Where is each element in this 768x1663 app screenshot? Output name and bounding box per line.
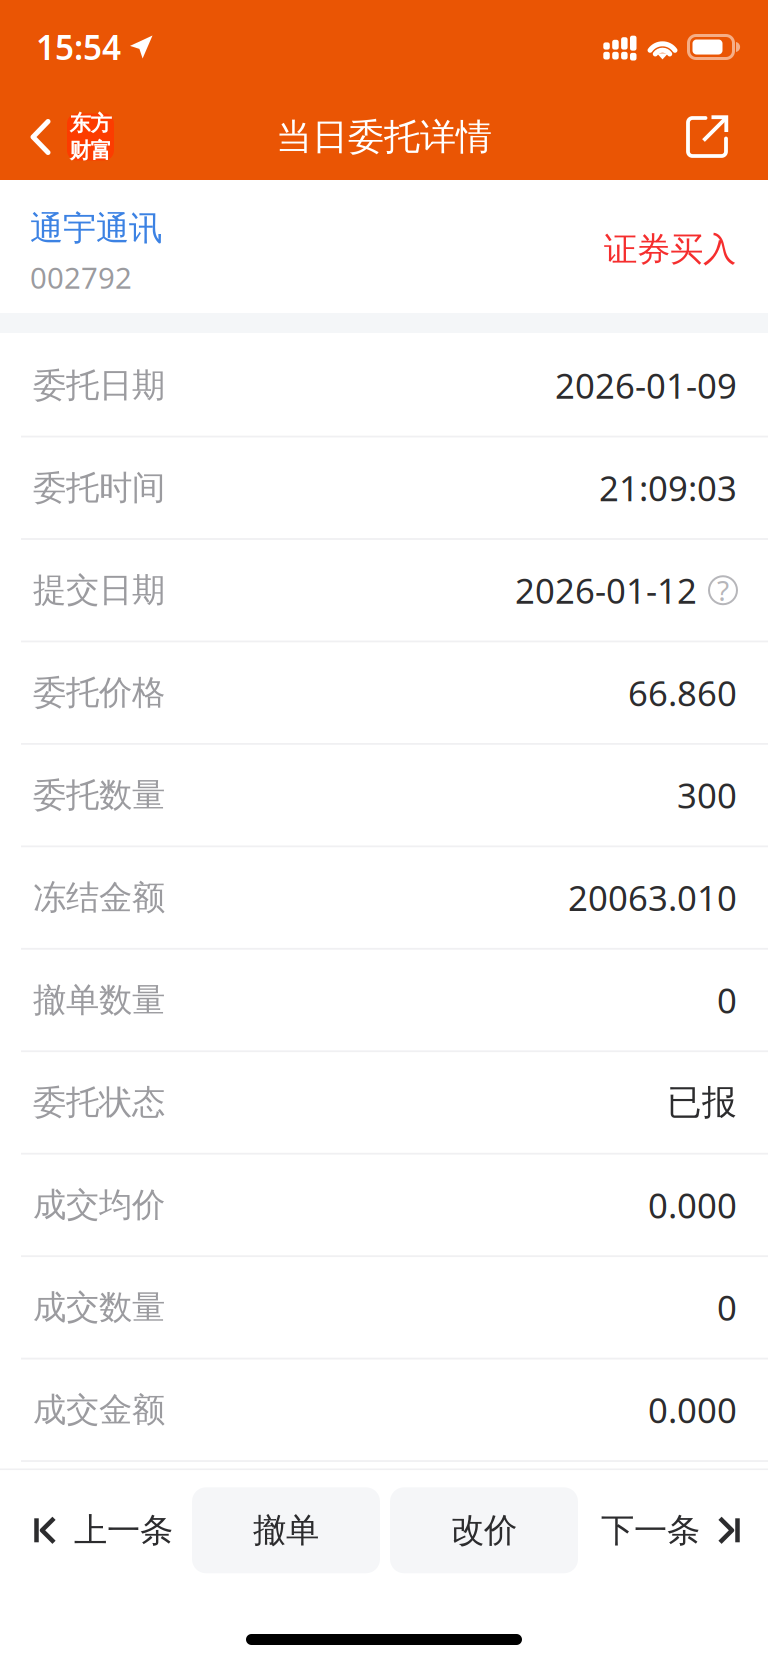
staticText: 21:09:03 <box>599 465 737 511</box>
staticText: 成交数量 <box>33 1287 165 1328</box>
staticText: 66.860 <box>628 670 737 716</box>
button[interactable]: Share <box>666 94 768 180</box>
staticText: 委托日期 <box>33 365 165 406</box>
staticText: 0 <box>717 1284 737 1330</box>
staticText: 委托价格 <box>33 672 165 713</box>
staticText: 委托时间 <box>33 467 165 508</box>
staticText: 20063.010 <box>568 875 737 921</box>
staticText: 002792 <box>30 258 132 297</box>
staticText: 成交金额 <box>33 1389 165 1430</box>
button[interactable]: 撤单 <box>192 1487 380 1573</box>
staticText: 已报 <box>667 1081 737 1124</box>
staticText: 委托状态 <box>33 1082 165 1123</box>
staticText: 委托数量 <box>33 775 165 816</box>
staticText: 财富 <box>69 137 111 164</box>
staticText: 当日委托详情 <box>276 115 492 159</box>
staticText: 0.000 <box>648 1182 737 1228</box>
staticText: 成交均价 <box>33 1184 165 1225</box>
staticText: 0.000 <box>648 1387 737 1433</box>
staticText: 撤单数量 <box>33 980 165 1020</box>
staticText: 通宇通讯 <box>30 208 162 249</box>
button[interactable]: 下一条 <box>578 1487 768 1573</box>
button[interactable]: Back <box>0 94 128 180</box>
staticText: 上一条 <box>74 1510 173 1551</box>
staticText: 改价 <box>451 1510 517 1551</box>
staticText: 300 <box>677 772 737 818</box>
staticText: 证券买入 <box>604 229 736 270</box>
staticText: 东方 <box>69 110 111 136</box>
staticText: ? <box>717 572 729 609</box>
button[interactable]: 改价 <box>390 1487 578 1573</box>
staticText: 0 <box>717 977 737 1023</box>
staticText: 提交日期 <box>33 570 165 611</box>
button[interactable]: 上一条 <box>0 1487 192 1573</box>
staticText: 15:54 <box>36 25 121 69</box>
staticText: 2026-01-09 <box>555 362 737 408</box>
staticText: 冻结金额 <box>33 877 165 918</box>
staticText: 2026-01-12 <box>515 567 697 613</box>
staticText: 下一条 <box>601 1510 700 1551</box>
staticText: 撤单 <box>253 1510 319 1551</box>
